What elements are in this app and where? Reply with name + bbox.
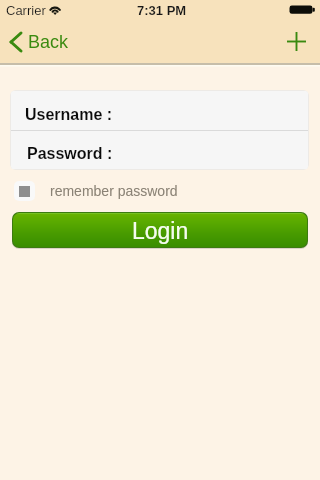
staticText: Password : xyxy=(27,145,113,163)
staticText: 7:31 PM xyxy=(137,3,187,18)
button[interactable]: remember password xyxy=(14,180,178,201)
button[interactable]: Password : xyxy=(11,131,308,169)
staticText: Back xyxy=(28,32,69,52)
button[interactable]: Add xyxy=(281,26,311,56)
button[interactable]: Username : xyxy=(11,91,308,130)
button[interactable]: Login xyxy=(13,213,307,247)
button[interactable]: Back xyxy=(9,28,69,56)
staticText: Login xyxy=(132,218,189,244)
staticText: remember password xyxy=(50,183,178,199)
staticText: Username : xyxy=(25,106,113,124)
staticText: Carrier xyxy=(6,3,46,18)
